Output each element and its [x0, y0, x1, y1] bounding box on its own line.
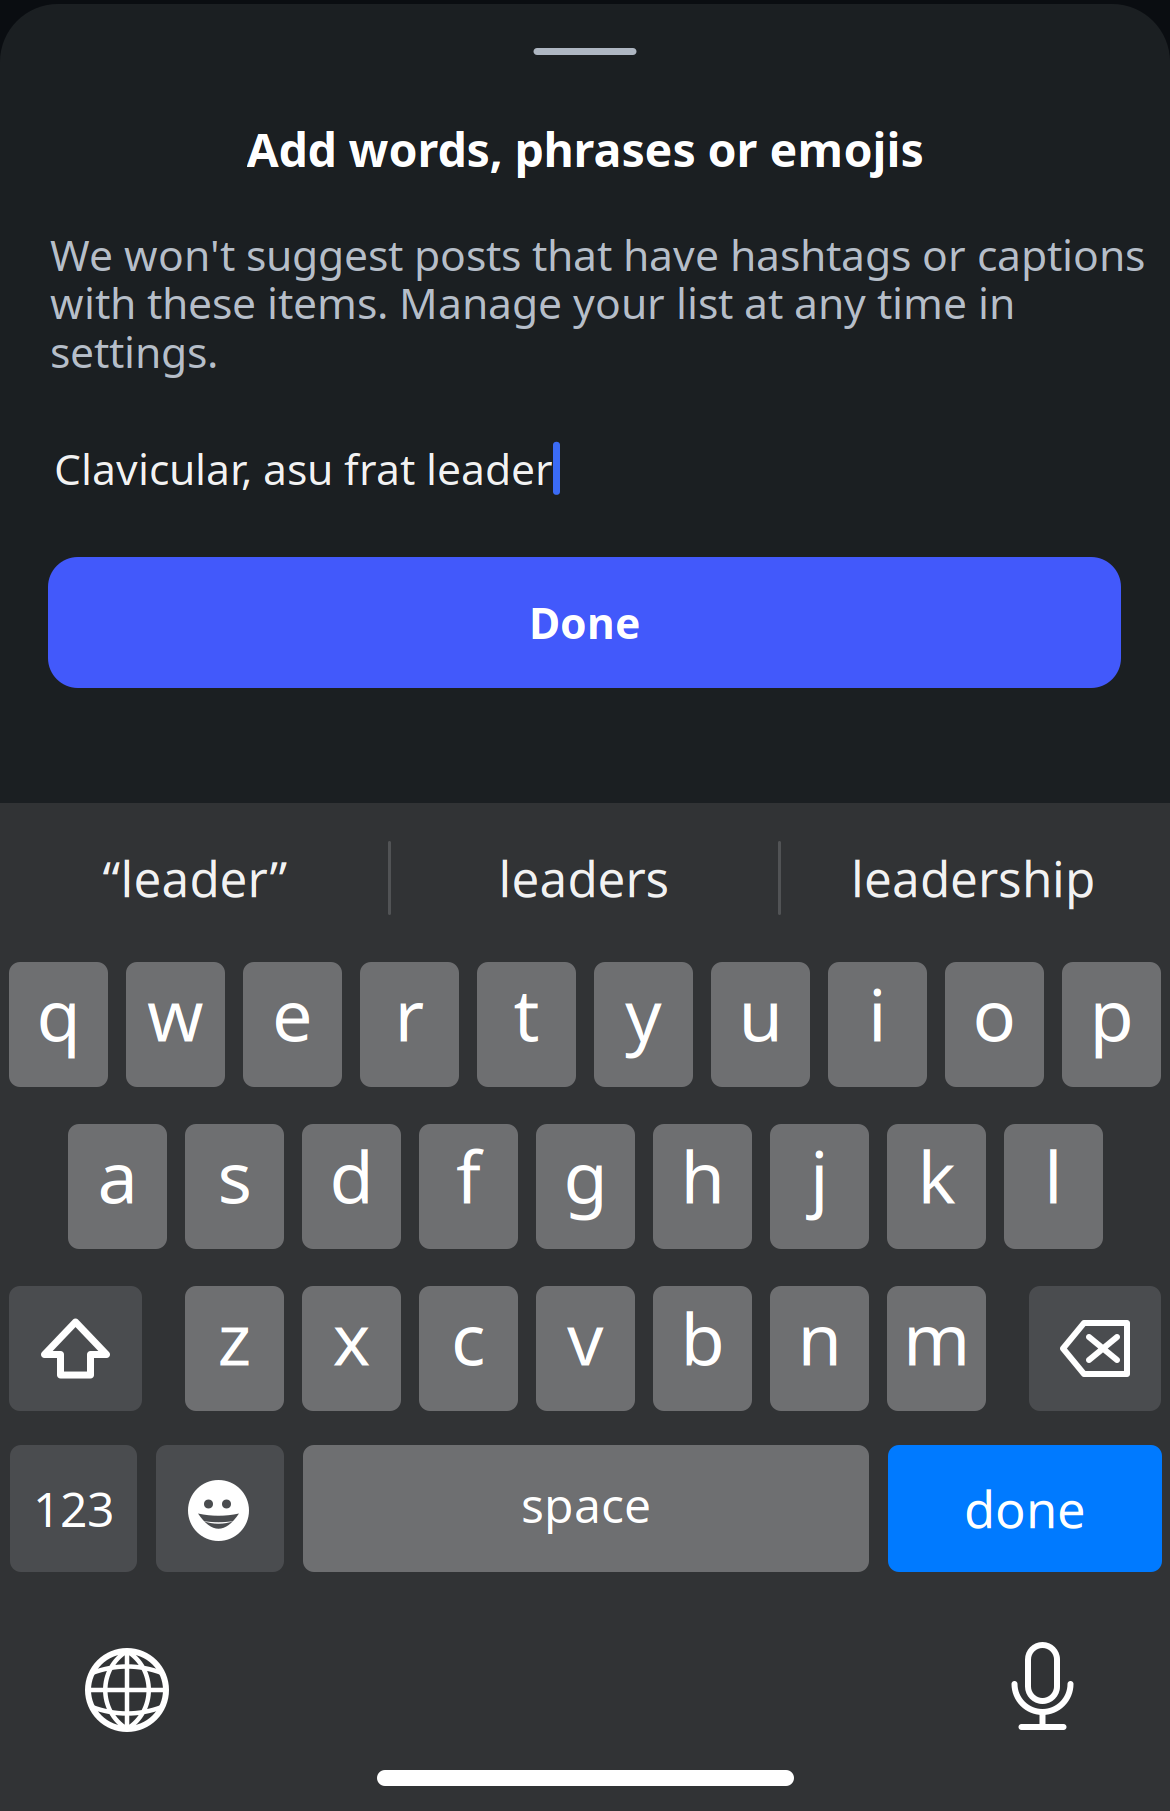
button[interactable]: Shift: [9, 1286, 142, 1411]
button[interactable]: a: [68, 1124, 167, 1249]
staticText: v: [567, 1290, 604, 1385]
button[interactable]: f: [419, 1124, 518, 1249]
button[interactable]: done: [888, 1445, 1162, 1572]
staticText: d: [329, 1128, 373, 1223]
button[interactable]: leadership: [783, 804, 1163, 952]
button[interactable]: space: [303, 1445, 869, 1572]
button[interactable]: p: [1062, 962, 1161, 1087]
staticText: k: [917, 1128, 955, 1223]
staticText: b: [680, 1290, 724, 1385]
button[interactable]: m: [887, 1286, 986, 1411]
button[interactable]: n: [770, 1286, 869, 1411]
staticText: done: [964, 1475, 1086, 1542]
button[interactable]: g: [536, 1124, 635, 1249]
button[interactable]: Dictation: [985, 1635, 1095, 1745]
button[interactable]: d: [302, 1124, 401, 1249]
staticText: leaders: [498, 845, 669, 911]
button[interactable]: v: [536, 1286, 635, 1411]
staticText: w: [147, 966, 204, 1061]
staticText: j: [810, 1128, 829, 1223]
staticText: n: [797, 1290, 841, 1385]
button[interactable]: Done: [48, 557, 1121, 688]
staticText: Add words, phrases or emojis: [246, 118, 923, 180]
button[interactable]: r: [360, 962, 459, 1087]
staticText: g: [563, 1128, 607, 1223]
staticText: r: [394, 966, 424, 1061]
button[interactable]: e: [243, 962, 342, 1087]
button[interactable]: l: [1004, 1124, 1103, 1249]
staticText: f: [456, 1128, 481, 1223]
staticText: l: [1044, 1128, 1063, 1223]
staticText: 123: [33, 1477, 114, 1540]
staticText: t: [513, 966, 539, 1061]
staticText: Done: [529, 594, 640, 651]
button[interactable]: u: [711, 962, 810, 1087]
button[interactable]: c: [419, 1286, 518, 1411]
staticText: q: [36, 966, 80, 1061]
button[interactable]: Next keyboard: [72, 1635, 182, 1745]
staticText: We won't suggest posts that have hashtag…: [50, 226, 1145, 283]
staticText: c: [451, 1290, 486, 1385]
button[interactable]: z: [185, 1286, 284, 1411]
staticText: settings.: [50, 323, 218, 380]
button[interactable]: Emoji: [156, 1445, 284, 1572]
button[interactable]: b: [653, 1286, 752, 1411]
staticText: p: [1089, 966, 1133, 1061]
staticText: x: [332, 1290, 370, 1385]
staticText: leadership: [851, 845, 1095, 911]
staticText: with these items. Manage your list at an…: [50, 274, 1015, 331]
button[interactable]: x: [302, 1286, 401, 1411]
staticText: m: [903, 1290, 970, 1385]
staticText: h: [680, 1128, 724, 1223]
button[interactable]: Delete: [1029, 1286, 1161, 1411]
button[interactable]: k: [887, 1124, 986, 1249]
staticText: a: [97, 1128, 137, 1223]
button[interactable]: o: [945, 962, 1044, 1087]
button[interactable]: “leader”: [5, 804, 385, 952]
staticText: o: [972, 966, 1016, 1061]
staticText: space: [521, 1473, 651, 1536]
staticText: s: [217, 1128, 251, 1223]
button[interactable]: t: [477, 962, 576, 1087]
button[interactable]: 123: [10, 1445, 137, 1572]
button[interactable]: w: [126, 962, 225, 1087]
staticText: Clavicular, asu frat leader: [54, 440, 553, 497]
button[interactable]: i: [828, 962, 927, 1087]
button[interactable]: s: [185, 1124, 284, 1249]
staticText: z: [217, 1290, 251, 1385]
staticText: u: [738, 966, 782, 1061]
button[interactable]: q: [9, 962, 108, 1087]
button[interactable]: j: [770, 1124, 869, 1249]
staticText: i: [868, 966, 887, 1061]
button[interactable]: h: [653, 1124, 752, 1249]
button[interactable]: y: [594, 962, 693, 1087]
staticText: y: [625, 966, 662, 1061]
button[interactable]: leaders: [394, 804, 774, 952]
staticText: “leader”: [102, 845, 287, 911]
staticText: e: [272, 966, 313, 1061]
